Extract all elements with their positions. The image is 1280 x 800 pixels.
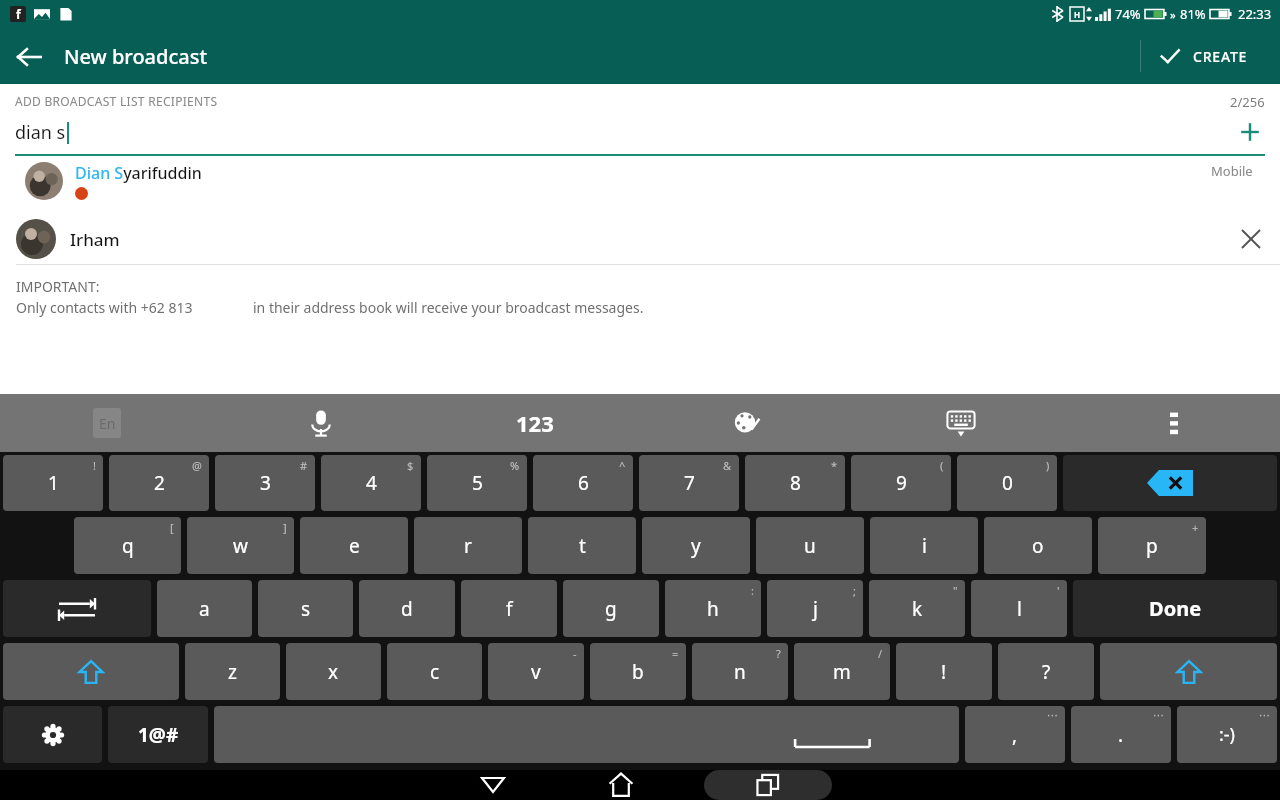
staticText: ;: [853, 583, 856, 598]
staticText: :-): [1219, 722, 1236, 747]
button[interactable]: q: [74, 517, 181, 574]
button[interactable]: Numbers: [428, 394, 641, 452]
staticText: 3: [260, 470, 271, 496]
button[interactable]: Shift: [1100, 643, 1277, 700]
button[interactable]: 1: [3, 455, 103, 511]
button[interactable]: Remove Irham: [1236, 224, 1266, 254]
button[interactable]: Backspace: [1063, 455, 1277, 511]
button[interactable]: Shift: [3, 643, 179, 700]
button[interactable]: En: [0, 394, 214, 452]
button[interactable]: n: [692, 643, 788, 700]
button[interactable]: f: [461, 580, 557, 637]
button[interactable]: u: [756, 517, 864, 574]
other: Back: [16, 44, 42, 70]
button[interactable]: 6: [533, 455, 633, 511]
button[interactable]: b: [590, 643, 686, 700]
staticText: ⋯: [1047, 709, 1058, 722]
staticText: ": [953, 583, 958, 598]
button[interactable]: CREATE: [1141, 31, 1266, 81]
button[interactable]: j: [767, 580, 863, 637]
button[interactable]: Recent apps: [704, 770, 832, 800]
button[interactable]: ,: [965, 706, 1065, 763]
button[interactable]: Add recipient: [1235, 117, 1265, 147]
staticText: ': [1057, 583, 1060, 598]
button[interactable]: .: [1071, 706, 1171, 763]
button[interactable]: Settings: [3, 706, 102, 763]
button[interactable]: p: [1098, 517, 1206, 574]
staticText: »: [1170, 7, 1176, 22]
staticText: +: [1192, 520, 1199, 535]
button[interactable]: t: [528, 517, 636, 574]
button[interactable]: 8: [745, 455, 845, 511]
button[interactable]: Theme: [641, 394, 854, 452]
staticText: ?: [1042, 659, 1051, 685]
staticText: @: [192, 458, 202, 473]
button[interactable]: Irham: [0, 214, 1280, 264]
staticText: f: [16, 6, 21, 22]
staticText: x: [328, 659, 339, 685]
button[interactable]: 3: [215, 455, 315, 511]
staticText: 22:33: [1238, 5, 1272, 23]
button[interactable]: More options: [1067, 394, 1280, 452]
button[interactable]: s: [258, 580, 353, 637]
button[interactable]: Home: [576, 770, 666, 800]
button[interactable]: r: [414, 517, 522, 574]
button[interactable]: c: [387, 643, 482, 700]
button[interactable]: 9: [851, 455, 951, 511]
button[interactable]: x: [286, 643, 381, 700]
button[interactable]: i: [870, 517, 978, 574]
staticText: z: [228, 659, 237, 685]
staticText: f: [506, 596, 513, 622]
button[interactable]: Back: [448, 770, 538, 800]
button[interactable]: d: [359, 580, 455, 637]
staticText: b: [632, 659, 644, 685]
button[interactable]: o: [984, 517, 1092, 574]
staticText: u: [804, 533, 816, 559]
staticText: New broadcast: [64, 43, 208, 70]
button[interactable]: 2: [109, 455, 209, 511]
staticText: v: [531, 659, 541, 685]
staticText: o: [1032, 533, 1044, 559]
staticText: 2: [154, 470, 165, 496]
button[interactable]: e: [300, 517, 408, 574]
button[interactable]: h: [665, 580, 761, 637]
button[interactable]: :-): [1177, 706, 1277, 763]
staticText: Done: [1149, 595, 1202, 622]
button[interactable]: 4: [321, 455, 421, 511]
button[interactable]: w: [187, 517, 294, 574]
staticText: $: [407, 458, 414, 473]
staticText: a: [199, 596, 210, 622]
staticText: ,: [1012, 722, 1018, 748]
button[interactable]: Keyboard layout: [854, 394, 1067, 452]
staticText: Dian Syarifuddin: [75, 162, 202, 184]
staticText: Only contacts with +62 813: [16, 298, 193, 317]
button[interactable]: l: [971, 580, 1067, 637]
button[interactable]: a: [157, 580, 252, 637]
button[interactable]: y: [642, 517, 750, 574]
staticText: CREATE: [1193, 47, 1248, 66]
button[interactable]: Dian Syarifuddin: [15, 156, 1265, 214]
button[interactable]: ?: [998, 643, 1094, 700]
staticText: h: [707, 596, 719, 622]
button[interactable]: g: [563, 580, 659, 637]
button[interactable]: Done: [1073, 580, 1277, 637]
staticText: !: [941, 659, 947, 685]
button[interactable]: 7: [639, 455, 739, 511]
button[interactable]: Space: [214, 706, 959, 763]
button[interactable]: 0: [957, 455, 1057, 511]
button[interactable]: k: [869, 580, 965, 637]
button[interactable]: 1@#: [108, 706, 208, 763]
staticText: 1: [48, 470, 59, 496]
button[interactable]: 5: [427, 455, 527, 511]
staticText: ^: [619, 458, 626, 473]
button[interactable]: Back: [8, 35, 216, 78]
staticText: :: [751, 583, 754, 598]
staticText: *: [831, 458, 838, 473]
button[interactable]: z: [185, 643, 280, 700]
button[interactable]: m: [794, 643, 890, 700]
button[interactable]: v: [488, 643, 584, 700]
staticText: &: [723, 458, 732, 473]
button[interactable]: !: [896, 643, 992, 700]
button[interactable]: Voice input: [214, 394, 428, 452]
button[interactable]: Tab: [3, 580, 151, 637]
